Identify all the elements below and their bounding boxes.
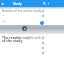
button[interactable]: Add	[40, 21, 44, 25]
button[interactable]: More options	[47, 2, 50, 5]
button[interactable]: Comment	[41, 41, 45, 45]
button[interactable]: Search	[43, 2, 46, 5]
button[interactable]: More	[41, 51, 45, 55]
button[interactable]: Navigate up	[1, 2, 5, 6]
staticText: Study	[13, 2, 22, 6]
staticText: Results of the online study	[2, 9, 42, 13]
staticText: a new study	[13, 36, 30, 40]
button[interactable]: Bookmark	[41, 9, 45, 13]
button[interactable]: Share	[41, 14, 45, 18]
button[interactable]: Like	[41, 36, 45, 40]
staticText: The results of the study	[2, 35, 23, 43]
button[interactable]: Play	[22, 26, 27, 31]
button[interactable]: Save	[41, 46, 45, 50]
staticText: on the web	[25, 36, 41, 40]
